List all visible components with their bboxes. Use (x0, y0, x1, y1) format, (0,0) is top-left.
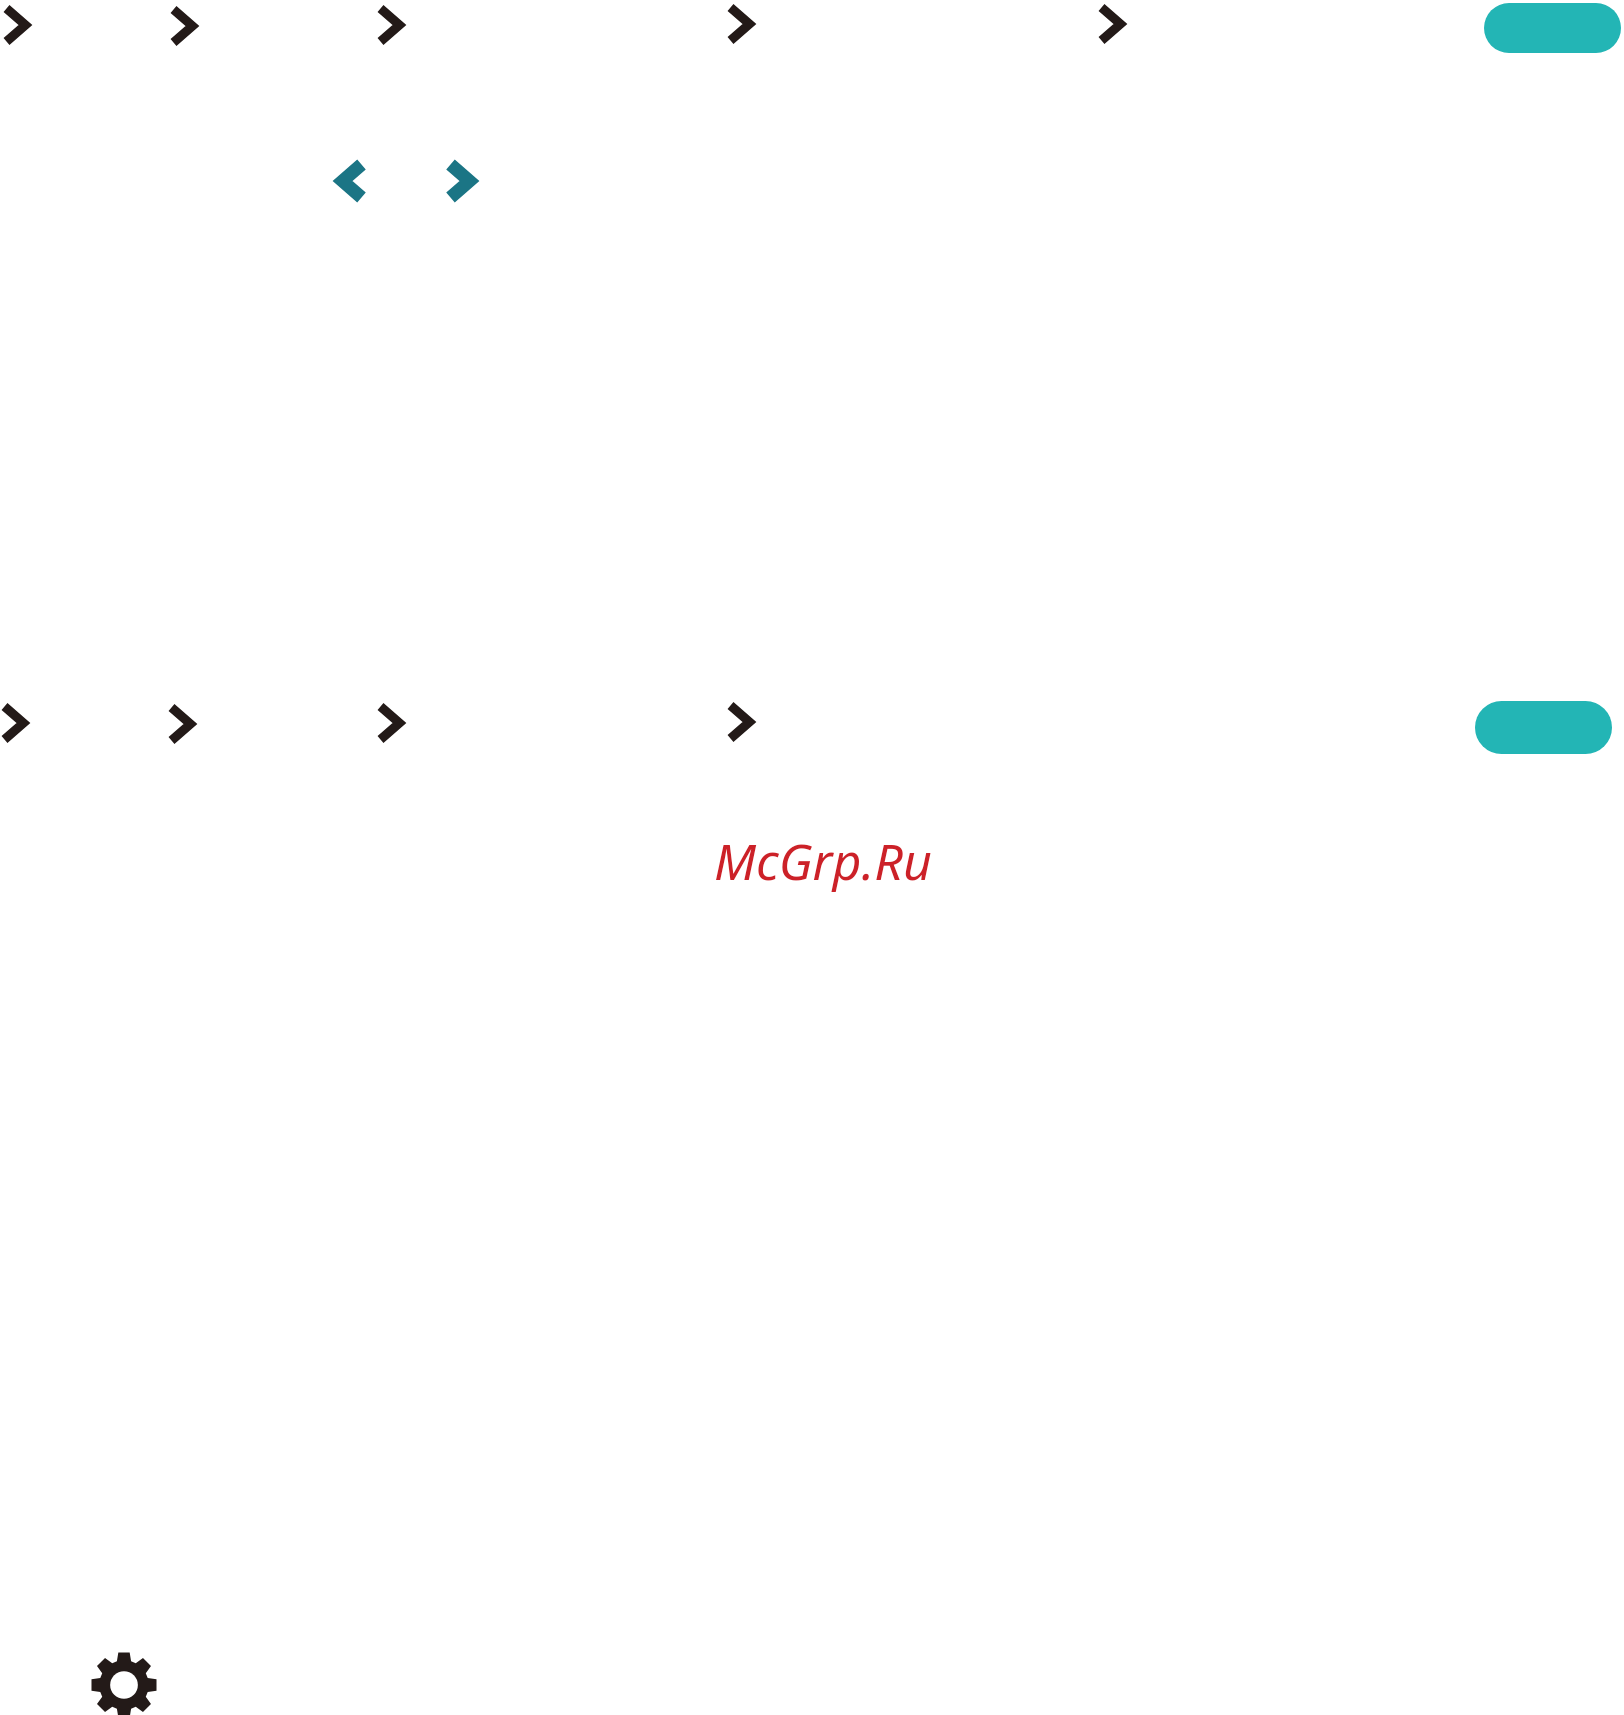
button[interactable]: Next (169, 5, 197, 47)
button[interactable]: Next (1097, 3, 1125, 45)
button[interactable]: Action (1475, 701, 1612, 754)
button[interactable]: Next (2, 4, 30, 46)
button[interactable]: Next (444, 158, 476, 204)
button[interactable]: McGrp.Ru (714, 827, 932, 895)
button[interactable]: Settings (91, 1652, 157, 1715)
button[interactable]: Next (726, 3, 754, 45)
button[interactable]: Next (0, 702, 28, 744)
staticText: McGrp.Ru (714, 827, 932, 895)
button[interactable]: Action (1484, 3, 1621, 53)
button[interactable]: Next (726, 701, 754, 743)
button[interactable]: Next (376, 4, 404, 46)
button[interactable]: Next (376, 702, 404, 744)
button[interactable]: Next (167, 703, 195, 745)
button[interactable]: Previous (336, 158, 368, 204)
